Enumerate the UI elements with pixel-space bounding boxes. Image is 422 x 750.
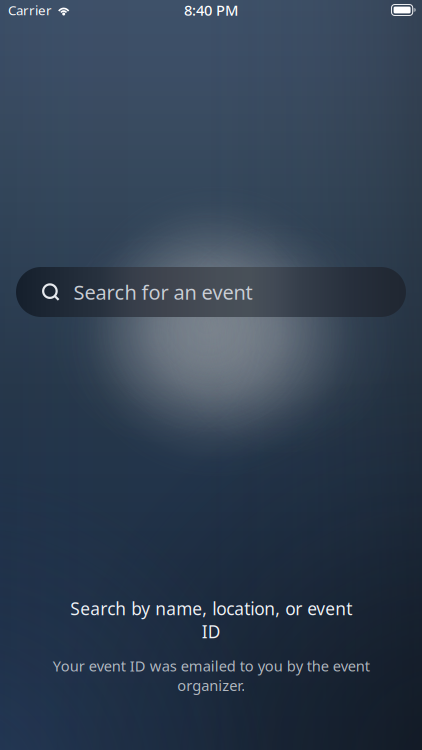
staticText: Carrier [8, 1, 52, 19]
staticText: Your event ID was emailed to you by the … [52, 656, 369, 695]
staticText: Search for an event [73, 279, 252, 305]
staticText: 8:40 PM [184, 0, 238, 20]
button[interactable]: Search for an event [16, 267, 406, 317]
staticText: Search by name, location, or event ID [70, 597, 352, 643]
